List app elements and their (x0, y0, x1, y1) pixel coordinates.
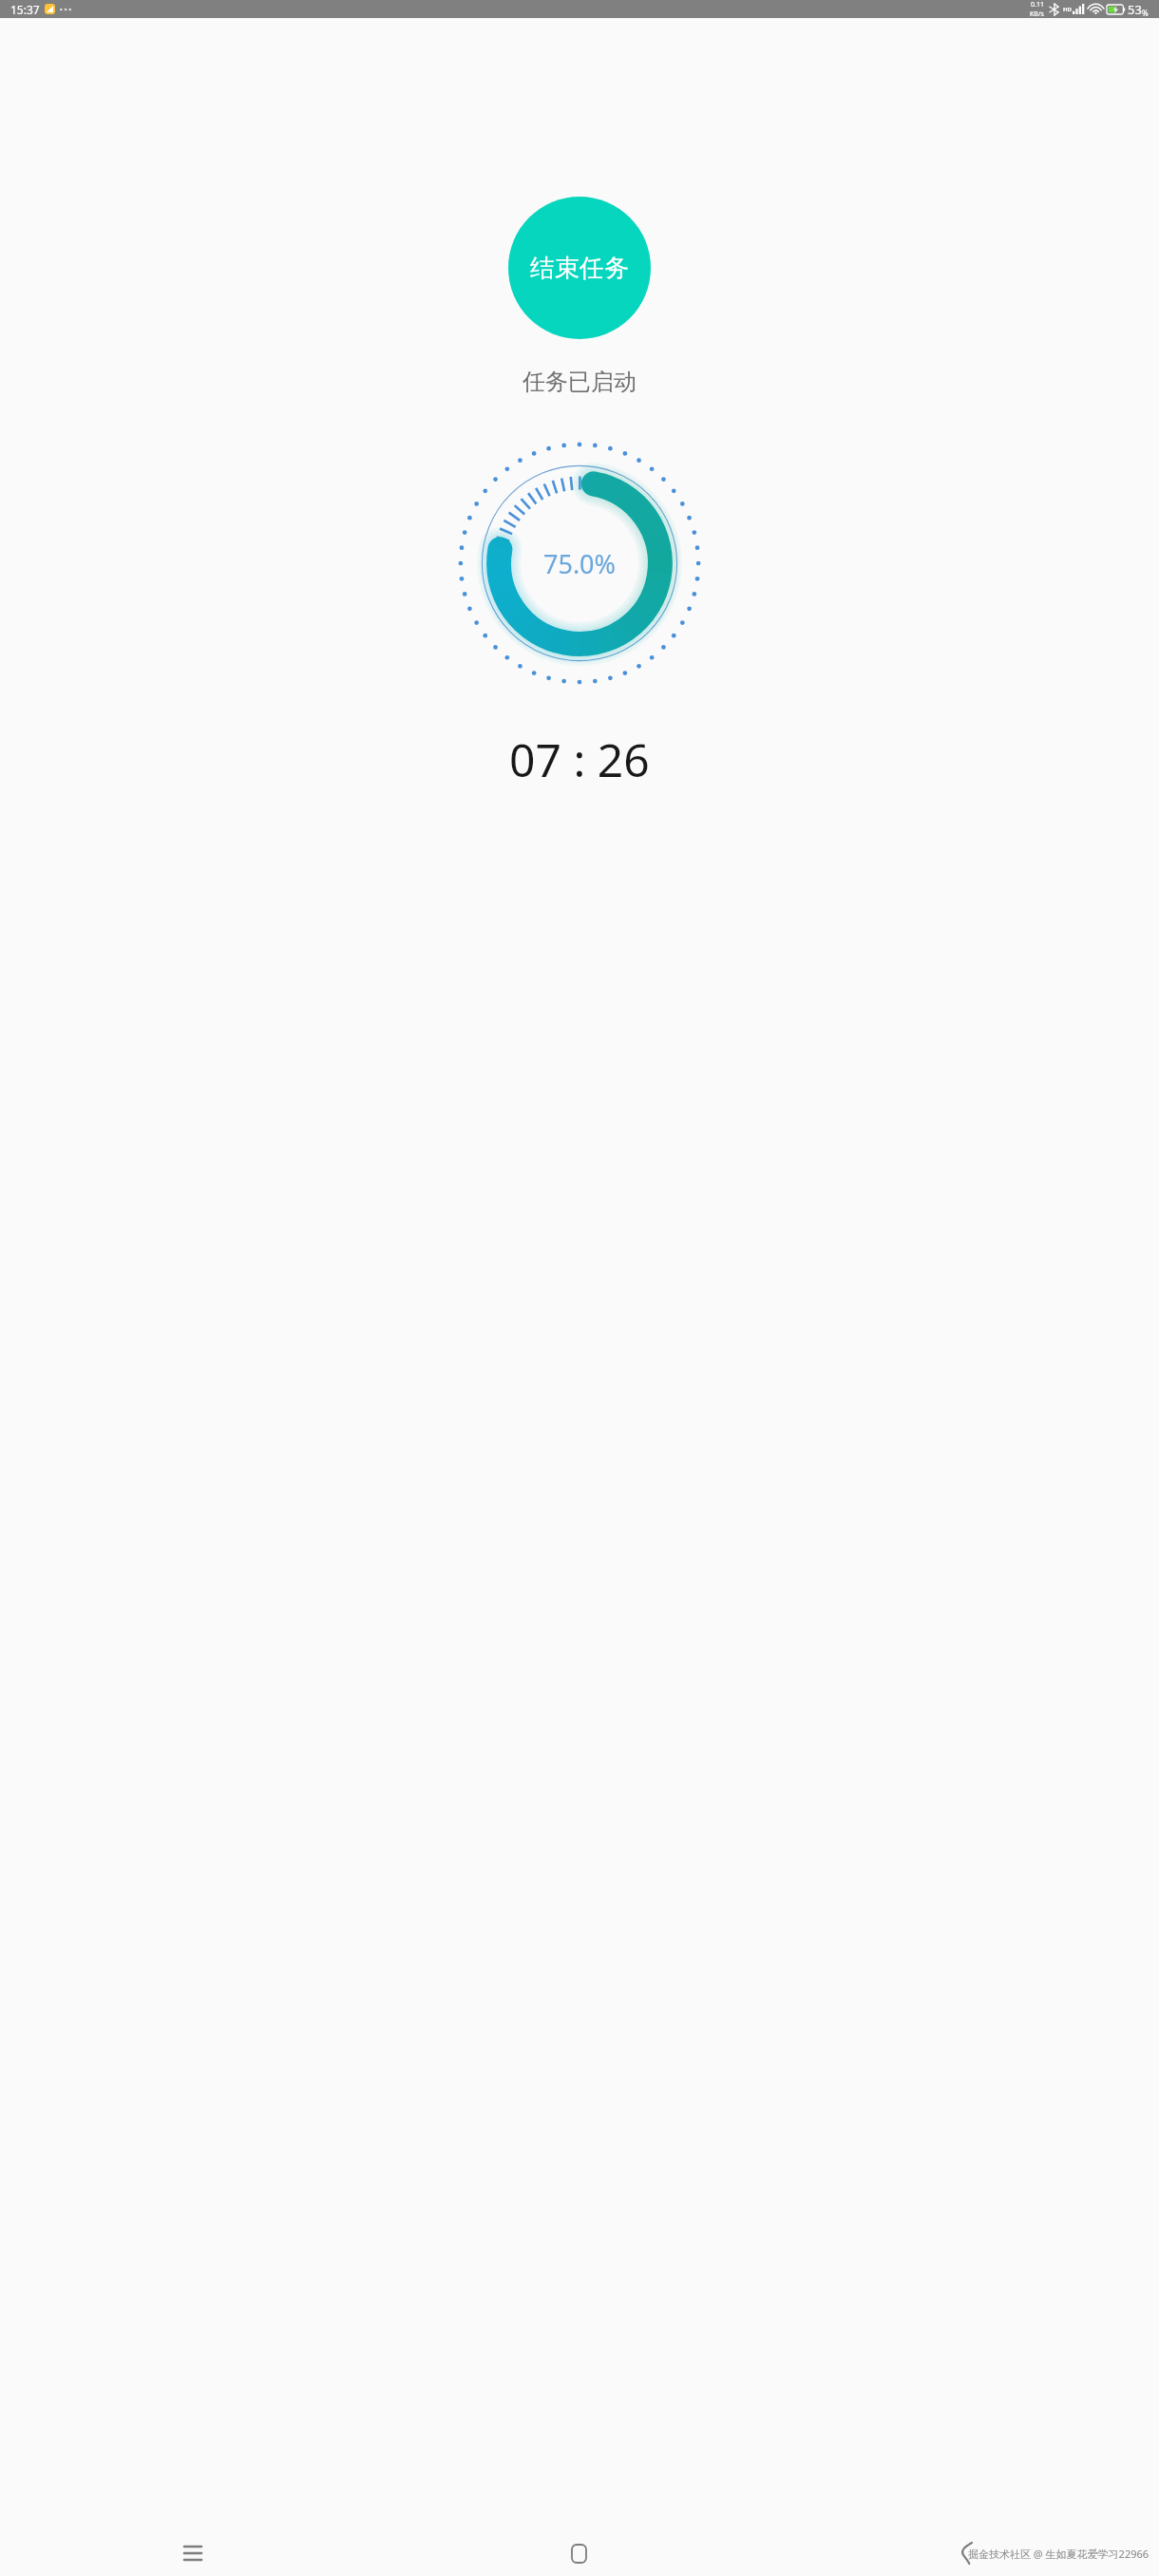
staticText: 0.11 (1031, 0, 1044, 9)
staticText: 掘金技术社区 @ 生如夏花爱学习22966 (968, 2547, 1149, 2561)
staticText: KB/s (1030, 9, 1044, 18)
staticText: 15:37 (10, 2, 40, 17)
staticText: 任务已启动 (522, 368, 636, 396)
button[interactable]: Back (772, 2530, 1159, 2576)
staticText: 结束任务 (530, 253, 629, 284)
staticText: % (1142, 8, 1149, 18)
button[interactable]: 结束任务 (508, 197, 651, 339)
staticText: 75.0% (543, 546, 617, 581)
staticText: 07 : 26 (509, 729, 650, 790)
button[interactable]: Home (386, 2530, 772, 2576)
staticText: HD (1063, 6, 1072, 13)
staticText: 53 (1128, 1, 1142, 18)
button[interactable]: Recents (0, 2530, 386, 2576)
